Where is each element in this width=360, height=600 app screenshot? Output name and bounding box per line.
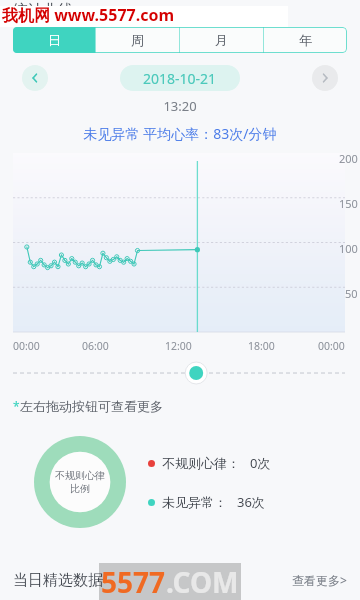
staticText: 统计曲线 bbox=[13, 1, 73, 20]
button[interactable]: 日 bbox=[13, 27, 95, 53]
staticText: * bbox=[13, 398, 20, 414]
button[interactable]: 周 bbox=[96, 27, 179, 53]
staticText: 200 bbox=[339, 151, 358, 166]
staticText: 12:00 bbox=[165, 339, 192, 353]
staticText: 年 bbox=[299, 32, 312, 48]
staticText: 不规则心律： bbox=[162, 455, 240, 471]
staticText: 0次 bbox=[250, 454, 271, 472]
staticText: 2018-10-21 bbox=[143, 69, 217, 87]
staticText: 06:00 bbox=[82, 339, 109, 353]
staticText: 未见异常： bbox=[162, 494, 227, 510]
staticText: 18:00 bbox=[248, 339, 275, 353]
staticText: 36次 bbox=[237, 493, 265, 511]
staticText: 查看更多> bbox=[292, 572, 347, 588]
staticText: 周 bbox=[131, 32, 144, 48]
staticText: 我机网 www.5577.com bbox=[2, 4, 175, 26]
staticText: 不规则心律 bbox=[55, 469, 105, 482]
button[interactable]: 年 bbox=[264, 27, 347, 53]
staticText: 13:20 bbox=[0, 97, 360, 115]
staticText: 100 bbox=[339, 241, 358, 256]
staticText: 左右拖动按钮可查看更多 bbox=[20, 398, 163, 414]
staticText: 当日精选数据 bbox=[13, 571, 103, 590]
staticText: 月 bbox=[215, 32, 228, 48]
staticText: 00:00 bbox=[13, 339, 40, 353]
button[interactable]: Drag to scrub time bbox=[181, 361, 211, 385]
staticText: 00:00 bbox=[318, 339, 345, 353]
staticText: 比例 bbox=[70, 482, 90, 495]
staticText: 50 bbox=[345, 286, 358, 301]
button[interactable]: 查看更多> bbox=[292, 572, 360, 588]
staticText: 日 bbox=[48, 32, 61, 48]
staticText: 150 bbox=[339, 196, 358, 211]
staticText: 5577 bbox=[101, 563, 166, 600]
button[interactable]: Next day bbox=[312, 65, 338, 91]
staticText: .COM bbox=[166, 563, 239, 600]
button[interactable]: Previous day bbox=[22, 65, 48, 91]
staticText: 未见异常 平均心率：83次/分钟 bbox=[0, 124, 360, 143]
button[interactable]: 2018-10-21 bbox=[120, 65, 240, 91]
button[interactable]: 月 bbox=[180, 27, 263, 53]
